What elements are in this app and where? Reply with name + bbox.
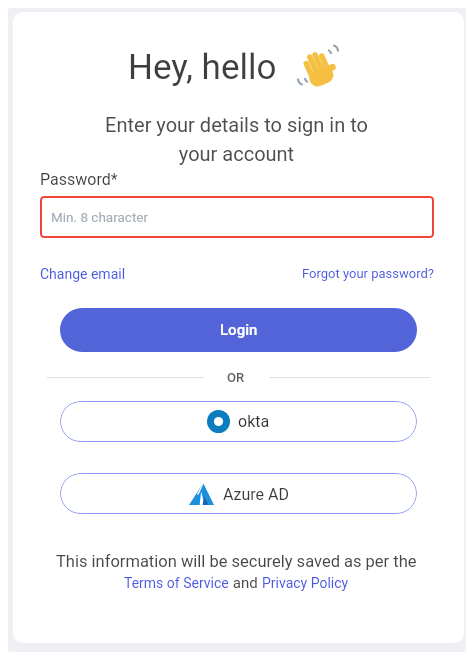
staticText: Azure AD <box>223 485 289 504</box>
staticText: Min. 8 character <box>51 209 149 225</box>
staticText: Password* <box>40 170 118 189</box>
button[interactable]: okta <box>60 401 417 442</box>
staticText: This information will be securely saved … <box>56 552 417 571</box>
button[interactable]: Privacy Policy <box>262 575 349 591</box>
button[interactable]: Login <box>60 308 417 352</box>
staticText: Login <box>220 321 258 339</box>
staticText: okta <box>238 412 270 431</box>
staticText: and <box>229 574 262 592</box>
staticText: OR <box>227 370 245 385</box>
staticText: Enter your details to sign in to your ac… <box>105 113 368 166</box>
staticText: Hey, hello <box>128 47 277 88</box>
button[interactable]: Azure AD <box>60 473 417 514</box>
button[interactable]: Forgot your password? <box>302 266 434 281</box>
button[interactable]: Terms of Service <box>124 575 229 591</box>
button[interactable]: Change email <box>40 266 126 282</box>
button[interactable]: Min. 8 character <box>40 196 434 238</box>
